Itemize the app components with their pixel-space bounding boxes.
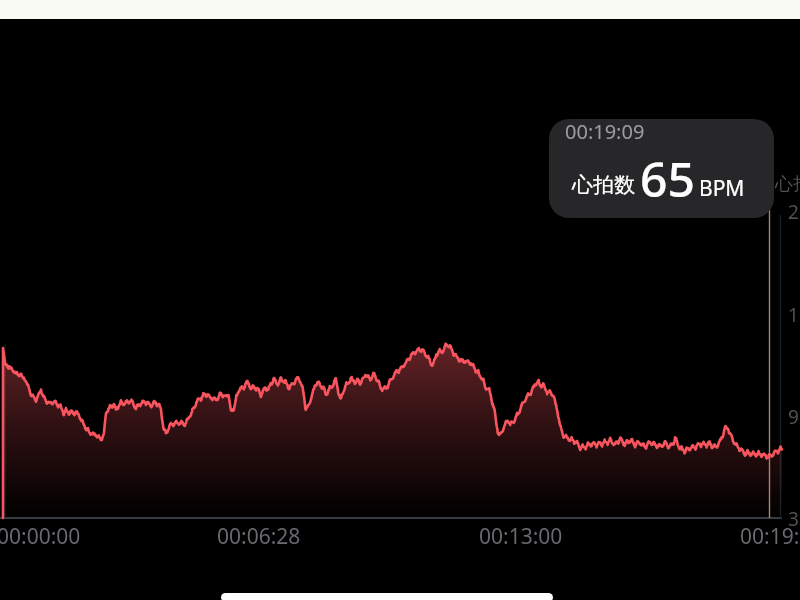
staticText: 心拍数 xyxy=(572,172,635,198)
button[interactable]: Heart rate 65 BPM at 00:19:09 xyxy=(549,119,774,218)
staticText: 00:00:00 xyxy=(0,522,81,551)
staticText: 心拍数 xyxy=(775,173,800,196)
staticText: BPM xyxy=(699,174,745,203)
staticText: 3 xyxy=(788,506,799,532)
staticText: 15 xyxy=(788,302,800,328)
staticText: 9 xyxy=(788,404,799,430)
staticText: 00:19:09 xyxy=(565,119,645,145)
staticText: 2 xyxy=(788,199,799,225)
staticText: 00:13:00 xyxy=(479,522,563,551)
staticText: 00:06:28 xyxy=(217,522,301,551)
staticText: 65 xyxy=(640,146,695,211)
button[interactable]: Home xyxy=(221,593,553,600)
staticText: 00:19:2 xyxy=(740,522,800,551)
